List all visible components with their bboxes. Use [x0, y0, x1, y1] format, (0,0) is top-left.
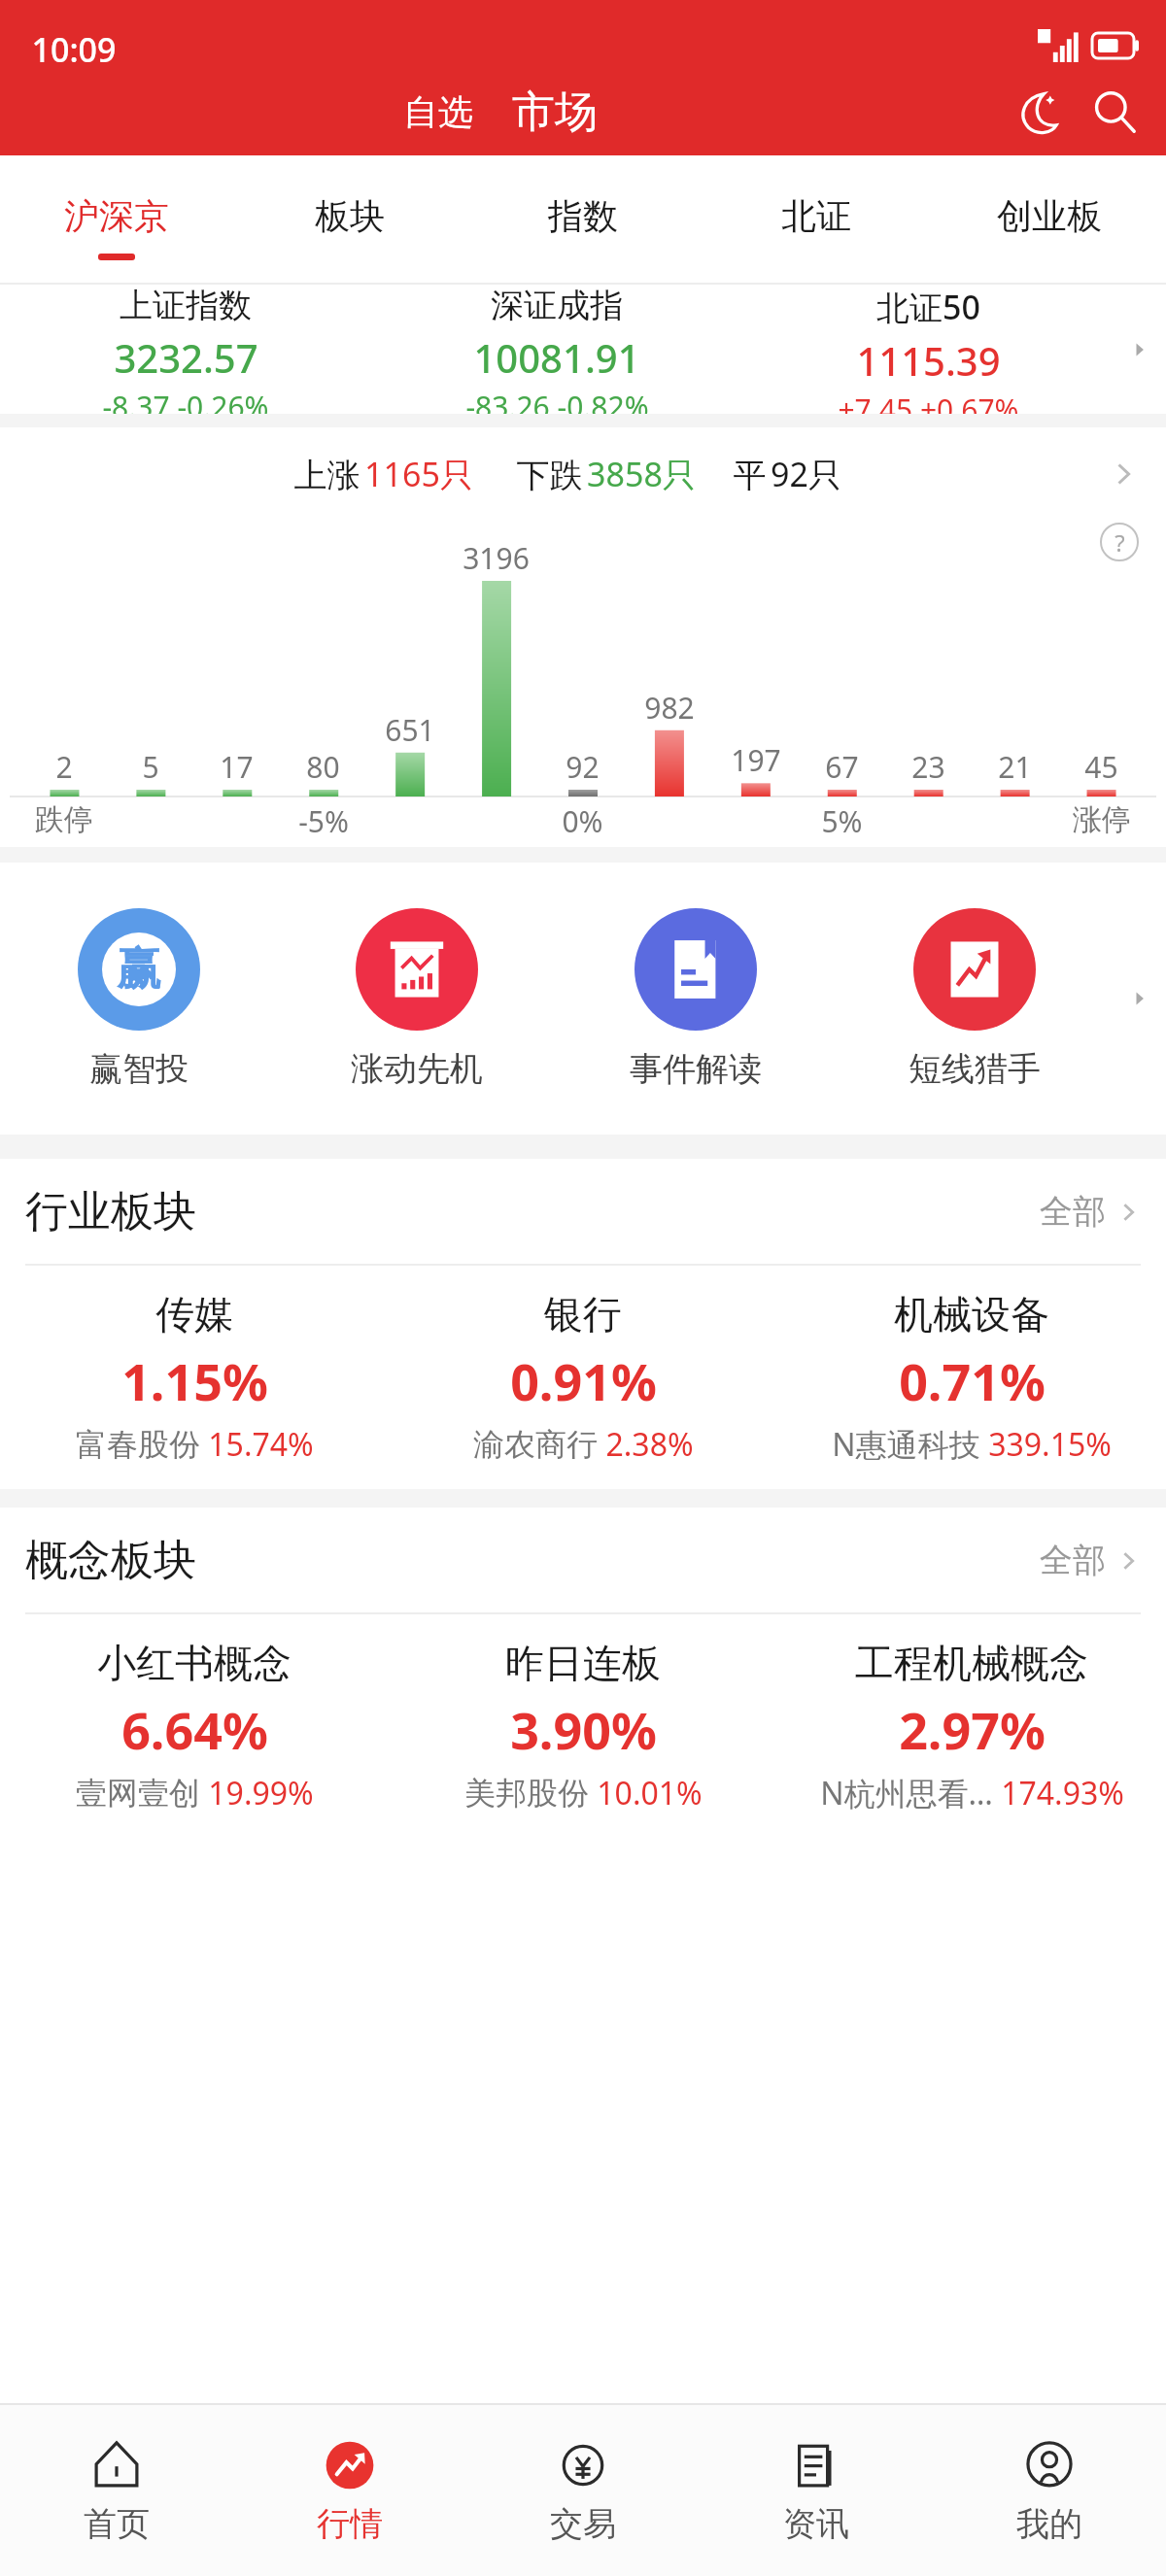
button[interactable]: 传媒 — [0, 1266, 389, 1489]
staticText: 赢智投 — [89, 1048, 189, 1090]
button[interactable]: 上证指数 — [0, 285, 371, 414]
staticText: 市场 — [512, 85, 598, 139]
staticText: 板块 — [315, 194, 385, 238]
button[interactable]: 深证成指 — [371, 285, 742, 414]
staticText: 10081.91 — [473, 331, 640, 384]
button[interactable]: 上涨 — [0, 427, 1166, 521]
staticText: 富春股份 — [76, 1425, 200, 1464]
staticText: 67 — [825, 747, 859, 787]
button[interactable]: 沪深京 — [0, 155, 233, 285]
staticText: -83.26 -0.82% — [465, 387, 649, 414]
staticText: 指数 — [548, 194, 618, 238]
staticText: 传媒 — [155, 1290, 233, 1339]
staticText: 北证50 — [876, 285, 980, 329]
staticText: 银行 — [544, 1290, 622, 1339]
staticText: +7.45 +0.67% — [838, 390, 1019, 414]
staticText: 5% — [821, 801, 863, 841]
staticText: 3858只 — [587, 452, 696, 496]
staticText: 15.74% — [208, 1423, 314, 1466]
staticText: ? — [1115, 526, 1125, 559]
staticText: 我的 — [1016, 2503, 1082, 2545]
staticText: 涨动先机 — [351, 1048, 483, 1090]
staticText: 0.91% — [510, 1346, 657, 1415]
staticText: 3232.57 — [114, 331, 258, 384]
button[interactable]: Search — [1079, 76, 1150, 148]
staticText: 339.15% — [988, 1423, 1112, 1466]
staticText: N杭州思看… — [820, 1772, 993, 1814]
staticText: 92 — [566, 747, 600, 787]
button[interactable]: 市场 — [500, 74, 609, 151]
staticText: 首页 — [84, 2503, 150, 2545]
button[interactable]: 全部 — [1016, 1530, 1166, 1591]
staticText: 21 — [998, 747, 1032, 787]
staticText: -5% — [298, 801, 349, 841]
staticText: 80 — [306, 747, 340, 787]
staticText: 美邦股份 — [464, 1774, 589, 1813]
button[interactable]: 北证 — [700, 155, 933, 285]
button[interactable]: 工程机械概念 — [777, 1614, 1166, 1838]
button[interactable]: 交易 — [466, 2405, 700, 2576]
button[interactable]: Night mode — [1001, 76, 1073, 148]
button[interactable]: 板块 — [233, 155, 466, 285]
button[interactable]: 赢 — [0, 863, 278, 1135]
staticText: 651 — [385, 710, 435, 750]
staticText: 2.38% — [605, 1423, 694, 1466]
staticText: 交易 — [550, 2503, 616, 2545]
button[interactable]: 北证50 — [742, 285, 1114, 414]
button[interactable]: 我的 — [933, 2405, 1166, 2576]
staticText: 概念板块 — [25, 1534, 196, 1587]
button[interactable]: 自选 — [392, 79, 485, 146]
staticText: 渝农商行 — [473, 1425, 598, 1464]
staticText: 3196 — [463, 538, 530, 578]
staticText: 全部 — [1040, 1191, 1106, 1233]
staticText: 全部 — [1040, 1540, 1106, 1581]
button[interactable]: 银行 — [389, 1266, 777, 1489]
staticText: 0% — [562, 801, 603, 841]
staticText: 19.99% — [208, 1772, 314, 1814]
staticText: 3.90% — [510, 1695, 657, 1764]
staticText: 昨日连板 — [505, 1639, 661, 1687]
button[interactable]: More indices — [1114, 285, 1166, 414]
staticText: 事件解读 — [630, 1048, 762, 1090]
staticText: 跌停 — [35, 801, 93, 838]
staticText: 赢 — [117, 941, 161, 998]
staticText: 17 — [220, 747, 254, 787]
staticText: 自选 — [403, 90, 473, 134]
staticText: 197 — [731, 740, 781, 780]
button[interactable]: 创业板 — [933, 155, 1166, 285]
staticText: 上涨 — [290, 452, 364, 496]
staticText: 10.01% — [597, 1772, 703, 1814]
staticText: 下跌 — [512, 452, 587, 496]
staticText: N惠通科技 — [832, 1423, 980, 1466]
staticText: 1115.39 — [856, 334, 1001, 387]
button[interactable]: 涨动先机 — [278, 863, 556, 1135]
staticText: 深证成指 — [491, 285, 623, 326]
staticText: 资讯 — [783, 2503, 849, 2545]
staticText: 5 — [142, 747, 159, 787]
staticText: 92只 — [771, 452, 841, 496]
button[interactable]: 短线猎手 — [835, 863, 1114, 1135]
button[interactable]: Help — [1098, 521, 1141, 563]
button[interactable]: 全部 — [1016, 1181, 1166, 1242]
staticText: 平 — [729, 452, 771, 496]
staticText: 机械设备 — [894, 1290, 1049, 1339]
button[interactable]: More tools — [1114, 863, 1166, 1135]
staticText: 行情 — [317, 2503, 383, 2545]
staticText: 沪深京 — [64, 194, 169, 238]
button[interactable]: 昨日连板 — [389, 1614, 777, 1838]
staticText: -8.37 -0.26% — [102, 387, 269, 414]
button[interactable]: 机械设备 — [777, 1266, 1166, 1489]
staticText: 北证 — [781, 194, 851, 238]
button[interactable]: 资讯 — [700, 2405, 933, 2576]
button[interactable]: 首页 — [0, 2405, 233, 2576]
button[interactable]: 小红书概念 — [0, 1614, 389, 1838]
staticText: 壹网壹创 — [76, 1774, 200, 1813]
button[interactable]: 指数 — [466, 155, 700, 285]
staticText: 小红书概念 — [97, 1639, 291, 1687]
staticText: 创业板 — [997, 194, 1102, 238]
button[interactable]: 行情 — [233, 2405, 466, 2576]
staticText: 上证指数 — [120, 285, 252, 326]
staticText: 6.64% — [121, 1695, 268, 1764]
button[interactable]: 事件解读 — [556, 863, 835, 1135]
staticText: 工程机械概念 — [855, 1639, 1088, 1687]
